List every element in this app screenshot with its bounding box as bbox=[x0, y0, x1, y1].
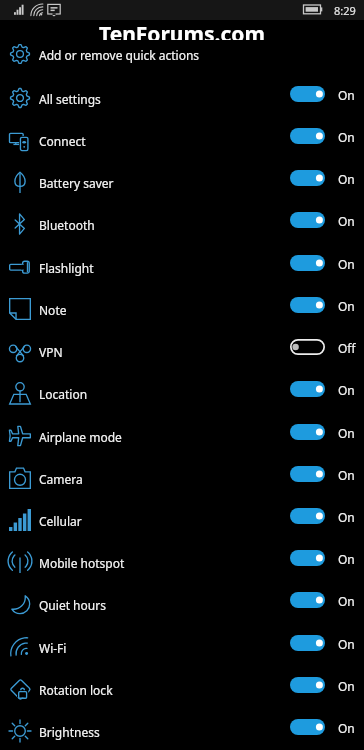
button[interactable]: Brightness toggle bbox=[290, 719, 325, 735]
button[interactable]: Note toggle bbox=[290, 297, 325, 313]
button[interactable]: Cellular toggle bbox=[290, 508, 325, 524]
button[interactable]: Connect toggle bbox=[290, 128, 325, 144]
staticText: Bluetooth bbox=[39, 217, 95, 233]
staticText: On bbox=[338, 213, 355, 229]
staticText: Airplane mode bbox=[39, 429, 122, 445]
staticText: TenForums.com bbox=[99, 20, 265, 40]
button[interactable]: Bluetooth toggle bbox=[290, 212, 325, 228]
staticText: Quiet hours bbox=[39, 597, 106, 613]
button[interactable]: Quiet hours toggle bbox=[290, 592, 325, 608]
staticText: Cellular bbox=[39, 513, 82, 529]
staticText: Flashlight bbox=[39, 260, 94, 276]
button[interactable]: Flashlight bbox=[0, 247, 364, 289]
button[interactable]: Connect bbox=[0, 120, 364, 162]
staticText: On bbox=[338, 467, 355, 483]
button[interactable]: Rotation lock bbox=[0, 669, 364, 711]
button[interactable]: Location toggle bbox=[290, 381, 325, 397]
staticText: Add or remove quick actions bbox=[39, 47, 200, 63]
button[interactable]: Camera toggle bbox=[290, 466, 325, 482]
staticText: Connect bbox=[39, 133, 86, 149]
staticText: Battery saver bbox=[39, 175, 114, 191]
staticText: On bbox=[338, 171, 355, 187]
button[interactable]: Flashlight toggle bbox=[290, 255, 325, 271]
staticText: On bbox=[338, 298, 355, 314]
staticText: On bbox=[338, 382, 355, 398]
staticText: Brightness bbox=[39, 724, 100, 740]
staticText: Note bbox=[39, 302, 67, 318]
button[interactable]: Location bbox=[0, 373, 364, 415]
button[interactable]: Note bbox=[0, 289, 364, 331]
staticText: Location bbox=[39, 386, 88, 402]
staticText: Mobile hotspot bbox=[39, 555, 125, 571]
button[interactable]: Battery saver toggle bbox=[290, 170, 325, 186]
button[interactable]: Mobile hotspot bbox=[0, 542, 364, 584]
staticText: On bbox=[338, 425, 355, 441]
staticText: Off bbox=[338, 340, 356, 356]
button[interactable]: Mobile hotspot toggle bbox=[290, 550, 325, 566]
staticText: On bbox=[338, 720, 355, 736]
staticText: On bbox=[338, 678, 355, 694]
button[interactable]: VPN bbox=[0, 331, 364, 373]
button[interactable]: Airplane mode bbox=[0, 416, 364, 458]
button[interactable]: All settings toggle bbox=[290, 86, 325, 102]
staticText: On bbox=[338, 129, 355, 145]
staticText: On bbox=[338, 551, 355, 567]
staticText: Rotation lock bbox=[39, 682, 113, 698]
button[interactable]: Wi-Fi toggle bbox=[290, 635, 325, 651]
button[interactable]: Brightness bbox=[0, 711, 364, 750]
staticText: On bbox=[338, 256, 355, 272]
button[interactable]: Cellular bbox=[0, 500, 364, 542]
staticText: All settings bbox=[39, 91, 101, 107]
button[interactable]: Rotation lock toggle bbox=[290, 677, 325, 693]
staticText: On bbox=[338, 593, 355, 609]
button[interactable]: Airplane mode toggle bbox=[290, 424, 325, 440]
button[interactable]: Camera bbox=[0, 458, 364, 500]
staticText: 8:29 bbox=[334, 3, 356, 18]
button[interactable]: Bluetooth bbox=[0, 204, 364, 246]
staticText: VPN bbox=[39, 344, 63, 360]
staticText: On bbox=[338, 509, 355, 525]
button[interactable]: Battery saver bbox=[0, 162, 364, 204]
staticText: Camera bbox=[39, 471, 83, 487]
staticText: On bbox=[338, 636, 355, 652]
staticText: On bbox=[338, 87, 355, 103]
button[interactable]: All settings bbox=[0, 78, 364, 120]
button[interactable]: Add or remove quick actions bbox=[0, 42, 364, 68]
staticText: Wi-Fi bbox=[39, 640, 67, 656]
button[interactable]: VPN toggle bbox=[290, 339, 325, 355]
button[interactable]: Wi-Fi bbox=[0, 627, 364, 669]
button[interactable]: Quiet hours bbox=[0, 584, 364, 626]
